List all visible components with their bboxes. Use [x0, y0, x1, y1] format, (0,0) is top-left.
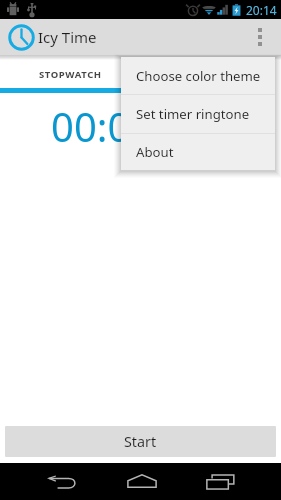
button[interactable]: Back	[24, 463, 100, 500]
button[interactable]: STOPWATCH	[0, 55, 140, 93]
staticText: 20:14	[246, 2, 277, 18]
button[interactable]: Recents	[182, 463, 258, 500]
staticText: About	[136, 143, 174, 161]
button[interactable]: Set timer ringtone	[121, 95, 275, 133]
staticText: Start	[124, 432, 157, 451]
staticText: STOPWATCH	[39, 68, 102, 81]
staticText: 00:00:00.0	[51, 99, 244, 153]
button[interactable]: More options	[239, 19, 281, 55]
staticText: Icy Time	[38, 27, 97, 47]
button[interactable]: About	[121, 134, 275, 170]
staticText: Choose color theme	[136, 67, 261, 85]
button[interactable]: Home	[103, 463, 179, 500]
button[interactable]: Start	[5, 426, 276, 457]
button[interactable]: Choose color theme	[121, 57, 275, 94]
staticText: Set timer ringtone	[136, 105, 250, 123]
